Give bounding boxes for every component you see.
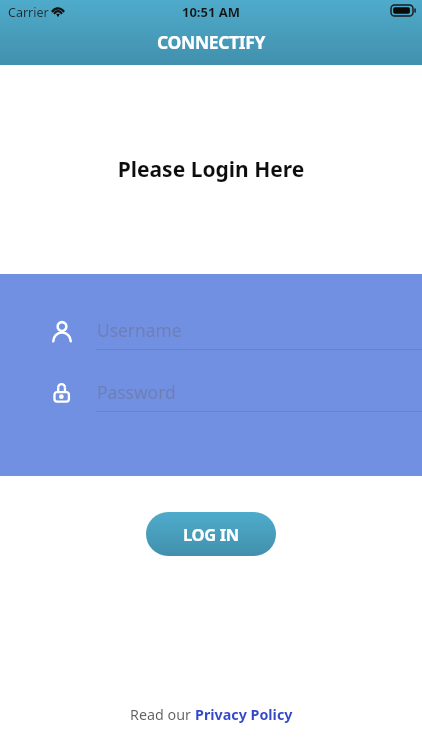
staticText: 10:51 AM	[0, 3, 422, 21]
staticText: Password	[97, 380, 176, 404]
other: User name	[51, 320, 73, 342]
button[interactable]: LOG IN	[146, 512, 276, 556]
staticText: Username	[97, 318, 182, 342]
button[interactable]: Password	[0, 376, 422, 416]
staticText: Carrier	[8, 4, 49, 21]
staticText: Privacy Policy	[195, 705, 293, 724]
other: Password	[51, 382, 73, 404]
staticText: CONNECTIFY	[157, 30, 266, 54]
button[interactable]: Privacy Policy	[195, 705, 293, 724]
staticText: Read our	[130, 705, 195, 724]
staticText: Please Login Here	[0, 155, 422, 184]
button[interactable]: User name	[0, 314, 422, 354]
staticText: LOG IN	[183, 523, 239, 545]
